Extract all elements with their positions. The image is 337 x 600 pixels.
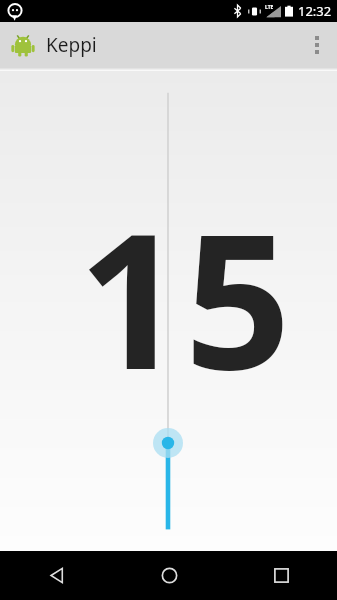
staticText: 15 [78, 170, 291, 423]
staticText: Keppi [46, 32, 97, 58]
button[interactable]: More options [297, 22, 337, 68]
button[interactable]: 15 [0, 71, 337, 551]
button[interactable]: Back [0, 551, 113, 600]
button[interactable]: Home [113, 551, 225, 600]
staticText: LTE [265, 4, 274, 11]
staticText: 12:32 [298, 2, 332, 20]
button[interactable]: Recent apps [225, 551, 337, 600]
